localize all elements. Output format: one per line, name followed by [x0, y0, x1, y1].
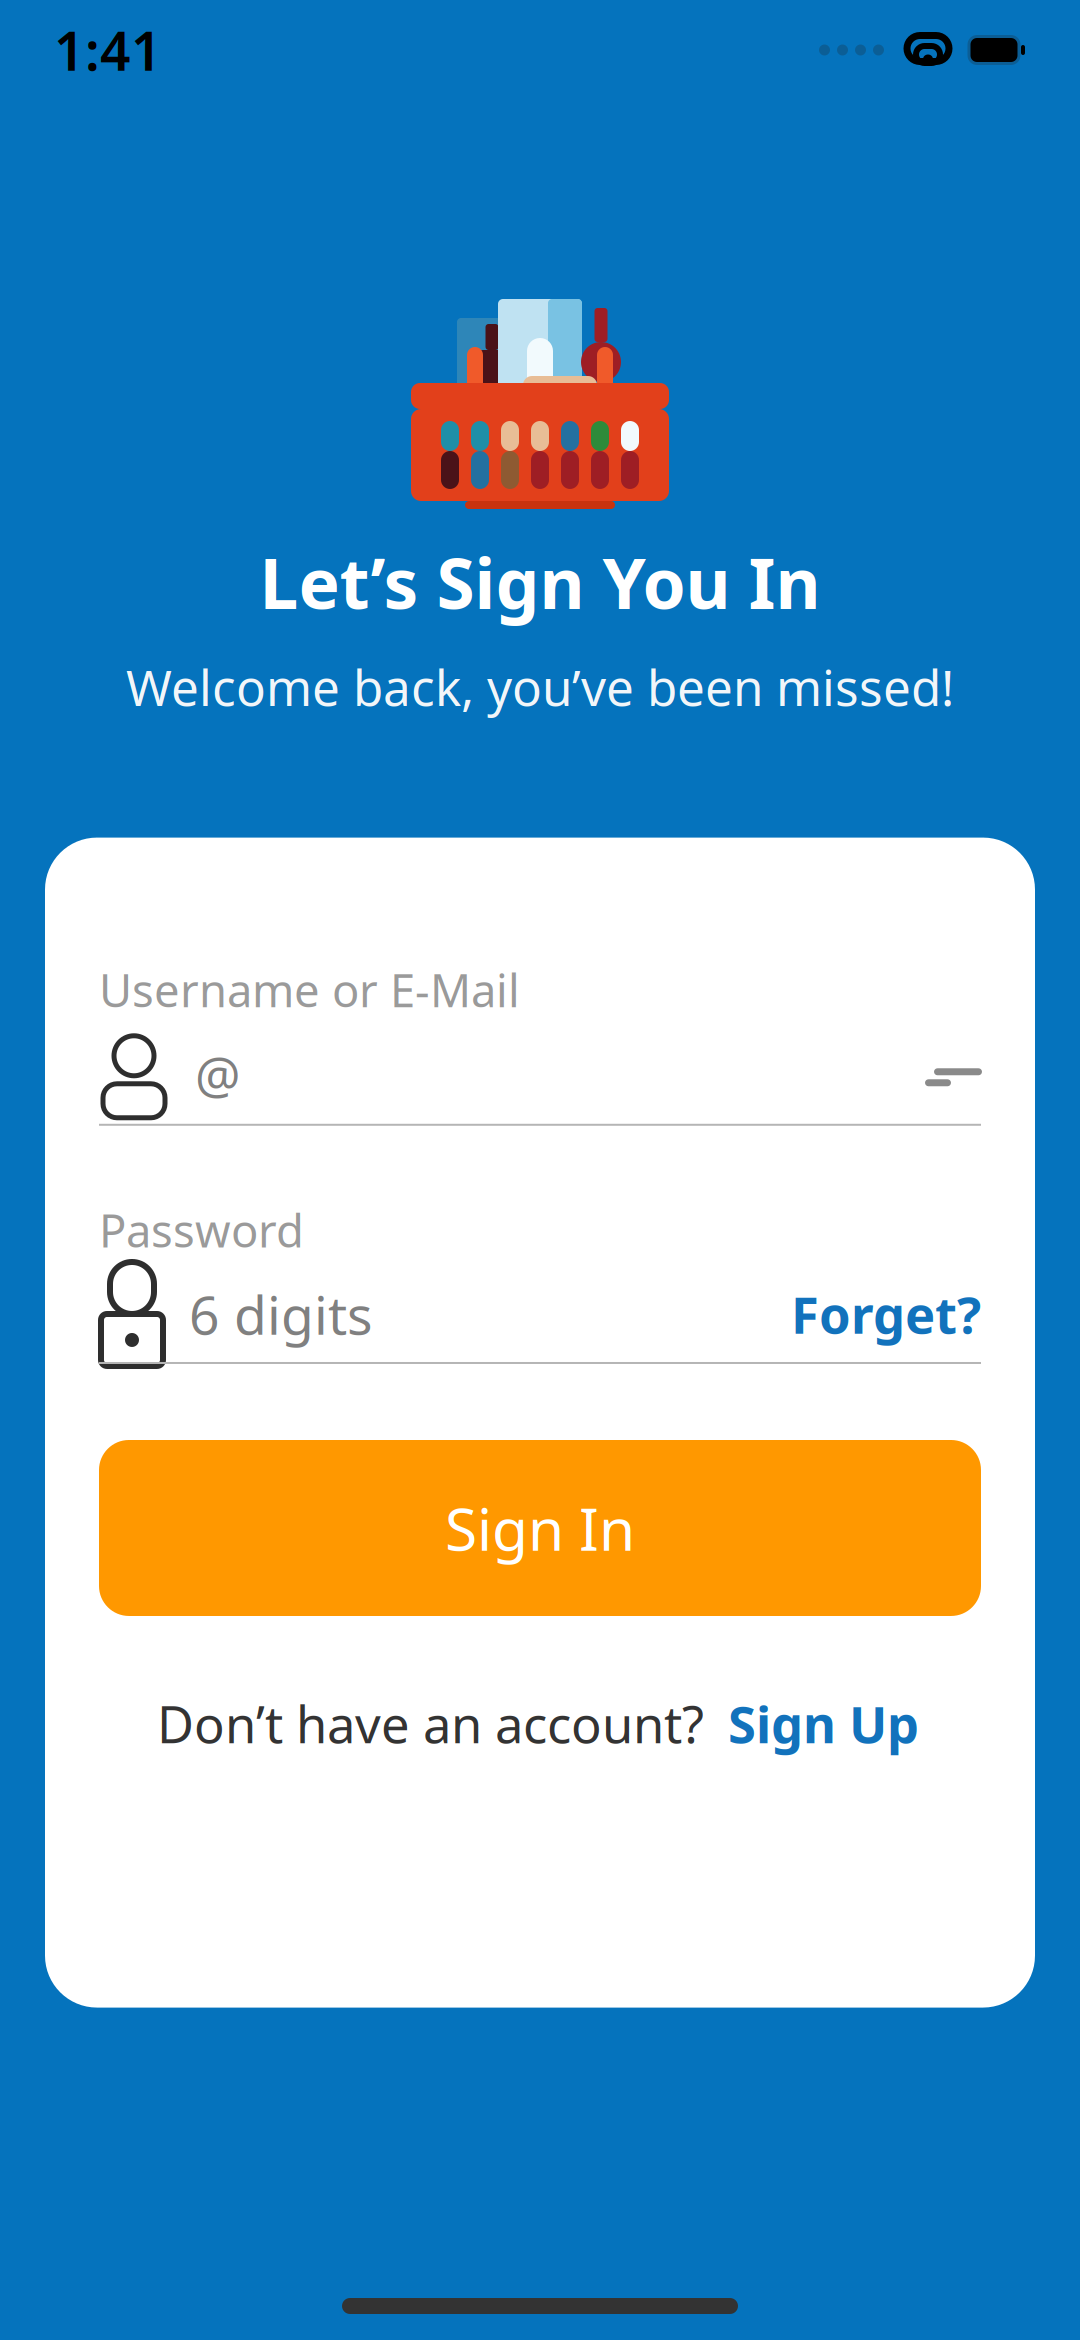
staticText: Sign In [445, 1489, 635, 1567]
staticText: Forget? [791, 1280, 981, 1348]
staticText: Username or E-Mail [99, 960, 520, 1020]
staticText: 1:41 [54, 15, 162, 85]
button[interactable]: Sign In [99, 1440, 981, 1616]
staticText: Password [99, 1200, 304, 1260]
staticText: 6 digits [189, 1279, 373, 1349]
staticText: Let’s Sign You In [259, 536, 820, 628]
staticText: Welcome back, you’ve been missed! [126, 654, 954, 720]
staticText: @ [195, 1041, 241, 1108]
staticText: Don’t have an account? [157, 1690, 704, 1757]
button[interactable]: Forget? [771, 1270, 981, 1358]
staticText: Sign Up [728, 1690, 919, 1757]
button[interactable]: Sign Up [704, 1678, 923, 1769]
